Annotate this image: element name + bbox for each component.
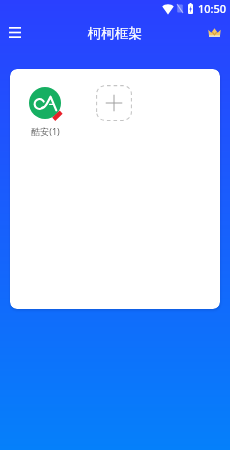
staticText: 酷安(1) — [31, 125, 60, 137]
button[interactable]: VIP — [202, 20, 226, 44]
button[interactable]: 酷安(1) — [28, 87, 62, 137]
button[interactable]: Menu — [2, 19, 28, 45]
staticText: 10:50 — [198, 1, 227, 16]
button[interactable]: Add — [96, 85, 132, 121]
staticText: 柯柯框架 — [88, 25, 142, 42]
